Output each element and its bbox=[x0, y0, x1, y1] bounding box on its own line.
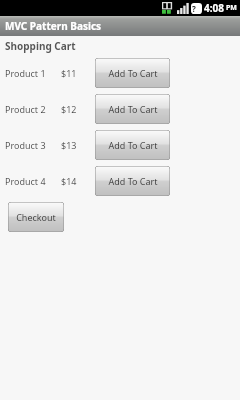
staticText: Product 4 bbox=[5, 175, 46, 187]
button[interactable]: Add To Cart bbox=[95, 166, 170, 196]
staticText: Add To Cart bbox=[108, 103, 158, 115]
button[interactable]: Checkout bbox=[8, 202, 64, 232]
staticText: ? bbox=[192, 3, 196, 14]
staticText: Product 1 bbox=[5, 67, 46, 79]
staticText: $14 bbox=[61, 175, 77, 187]
staticText: Add To Cart bbox=[108, 139, 158, 151]
button[interactable]: Add To Cart bbox=[95, 58, 170, 88]
staticText: $11 bbox=[61, 67, 77, 79]
staticText: Add To Cart bbox=[108, 67, 158, 79]
staticText: Checkout bbox=[16, 211, 56, 223]
button[interactable]: Add To Cart bbox=[95, 130, 170, 160]
staticText: $12 bbox=[61, 103, 77, 115]
staticText: Product 3 bbox=[5, 139, 46, 151]
staticText: PM bbox=[226, 3, 237, 13]
staticText: $13 bbox=[61, 139, 77, 151]
staticText: 4:08 bbox=[204, 1, 224, 15]
staticText: Product 2 bbox=[5, 103, 46, 115]
staticText: Shopping Cart bbox=[5, 39, 76, 53]
staticText: MVC Pattern Basics bbox=[5, 19, 102, 33]
button[interactable]: Add To Cart bbox=[95, 94, 170, 124]
staticText: Add To Cart bbox=[108, 175, 158, 187]
